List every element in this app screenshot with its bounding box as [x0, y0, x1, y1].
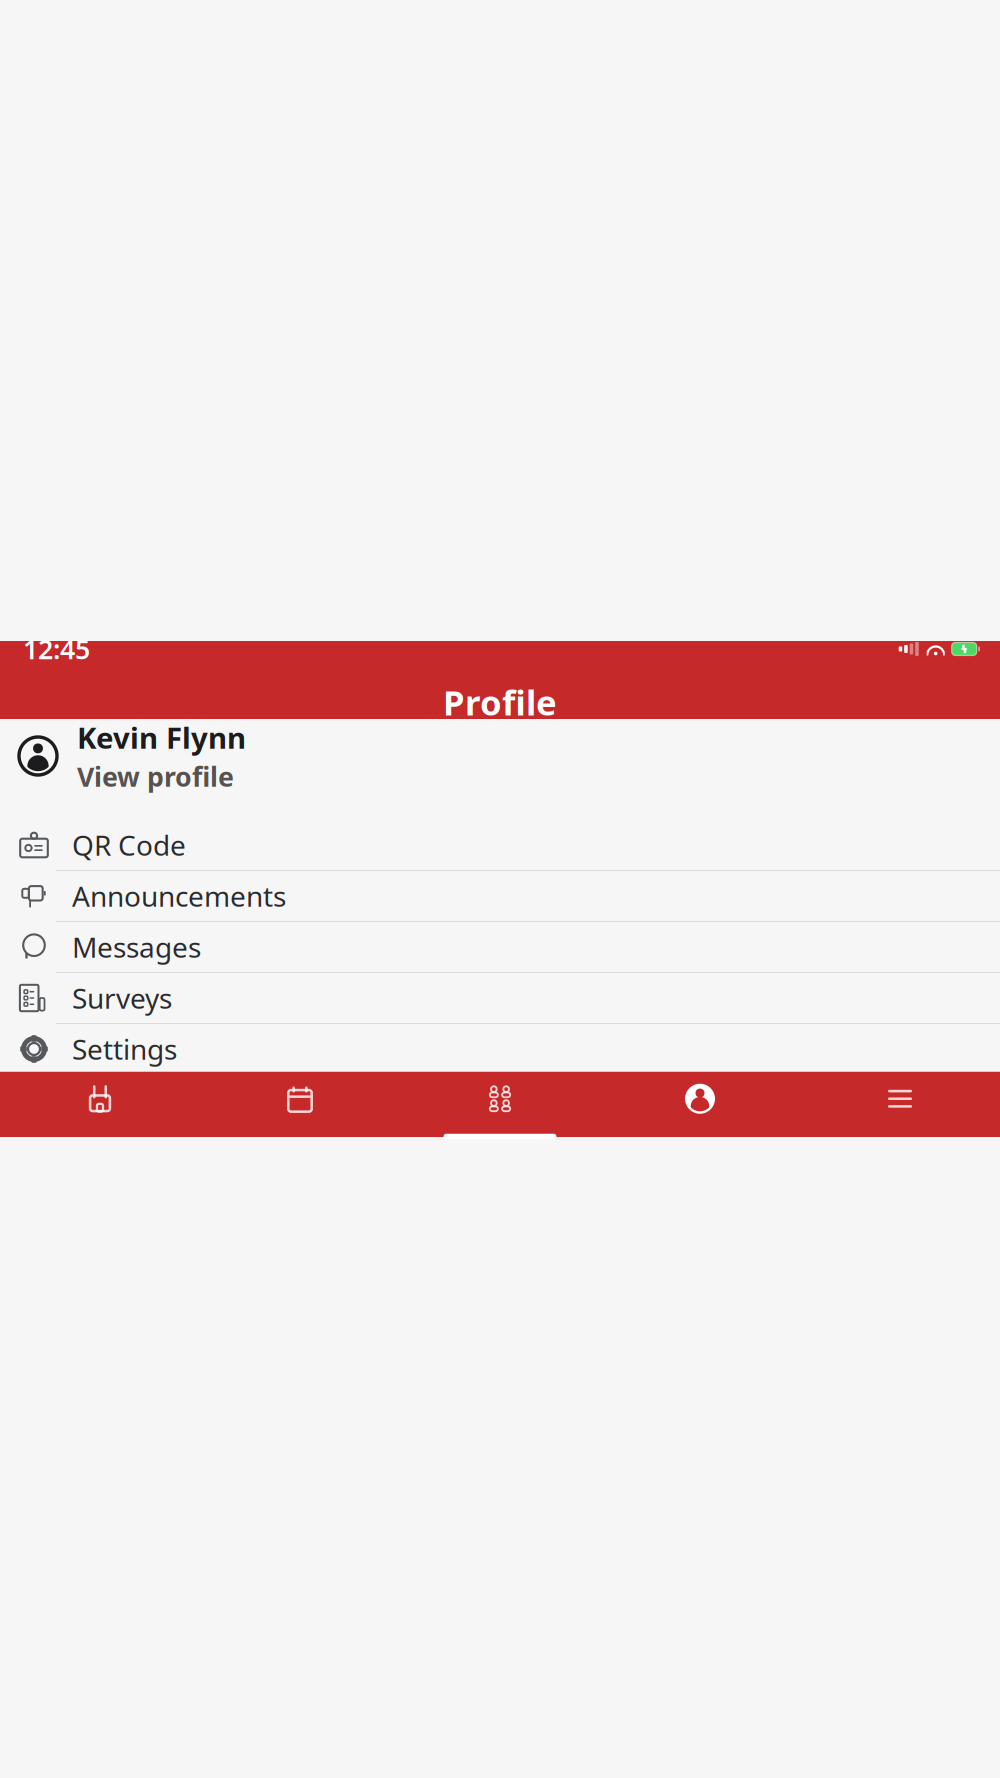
staticText: Kevin Flynn: [77, 718, 246, 757]
staticText: Messages: [72, 928, 201, 966]
button[interactable]: Kevin Flynn: [0, 719, 1000, 793]
staticText: QR Code: [72, 826, 186, 864]
staticText: Announcements: [72, 877, 286, 915]
button[interactable]: Profile: [600, 1072, 800, 1126]
button[interactable]: Settings: [0, 1024, 1000, 1075]
button[interactable]: Home: [0, 1072, 200, 1126]
button[interactable]: Messages: [0, 922, 1000, 973]
button[interactable]: Menu: [800, 1072, 1000, 1126]
button[interactable]: People: [400, 1072, 600, 1126]
staticText: Profile: [443, 679, 557, 725]
staticText: View profile: [77, 759, 234, 794]
button[interactable]: Surveys: [0, 973, 1000, 1024]
button[interactable]: Announcements: [0, 871, 1000, 922]
button[interactable]: Calendar: [200, 1072, 400, 1126]
staticText: 12:45: [23, 631, 90, 667]
button[interactable]: QR Code: [0, 820, 1000, 871]
staticText: Surveys: [72, 979, 172, 1017]
staticText: Settings: [72, 1030, 177, 1068]
